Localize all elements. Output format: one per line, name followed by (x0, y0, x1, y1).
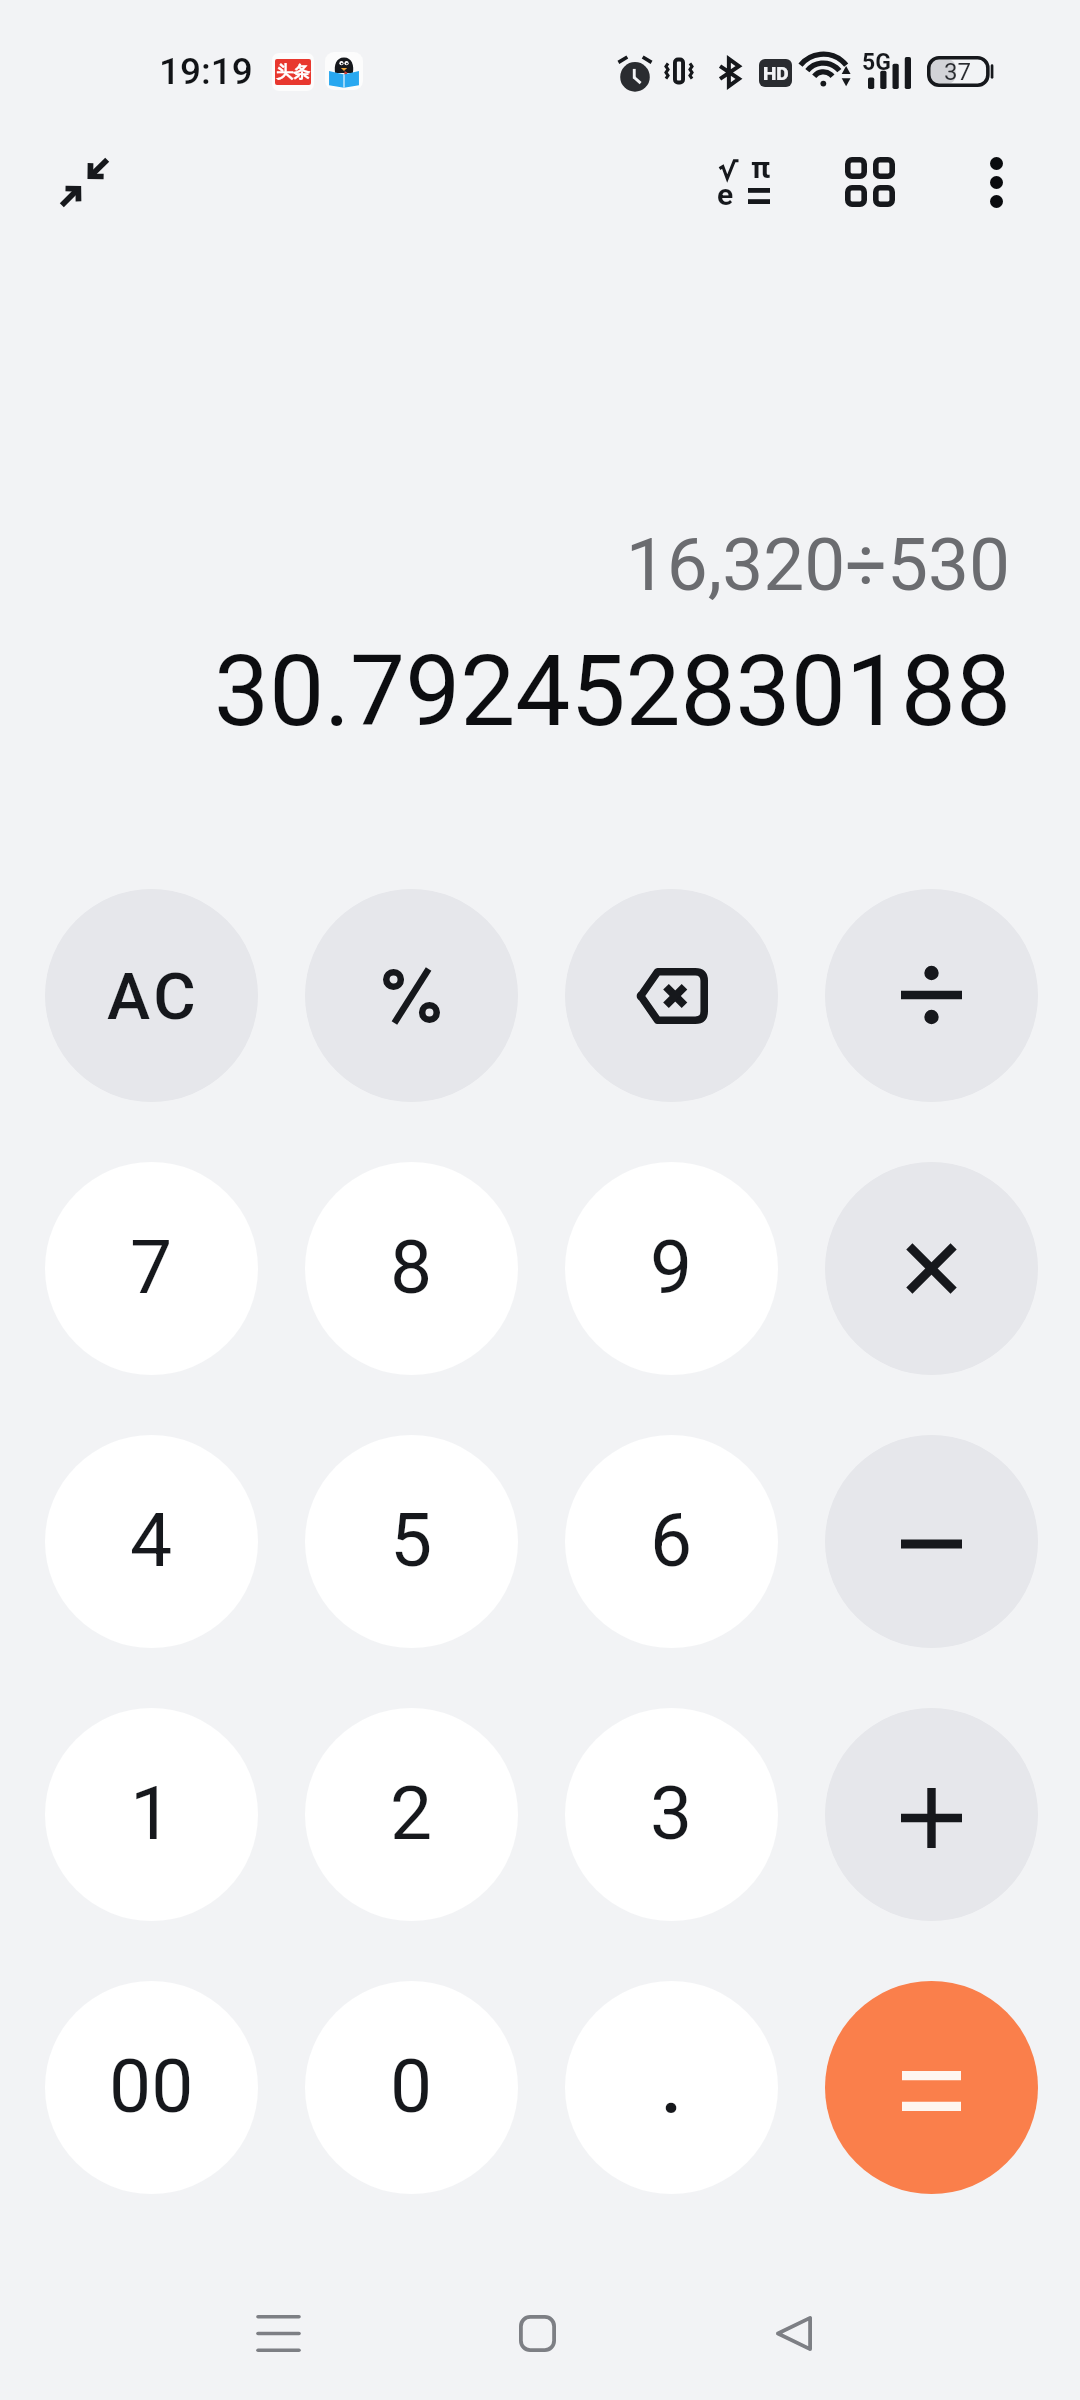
button[interactable]: Recents (218, 2273, 338, 2393)
staticText: 7 (130, 1223, 173, 1311)
staticText: 37 (944, 58, 971, 86)
button[interactable]: More options (944, 130, 1048, 234)
button[interactable]: Percent (305, 889, 518, 1102)
staticText: . (659, 2024, 685, 2135)
button[interactable]: 1 (45, 1708, 258, 1921)
button[interactable]: 9 (565, 1162, 778, 1375)
button[interactable]: AC (45, 889, 258, 1102)
staticText: 2 (390, 1769, 433, 1857)
button[interactable]: 2 (305, 1708, 518, 1921)
button[interactable]: 5 (305, 1435, 518, 1648)
staticText: 19:19 (159, 50, 253, 93)
button[interactable]: Backspace (565, 889, 778, 1102)
staticText: 0 (390, 2042, 433, 2130)
button[interactable]: . (565, 1981, 778, 2194)
button[interactable]: Scientific mode (691, 130, 795, 234)
button[interactable]: Back (734, 2273, 854, 2393)
button[interactable]: Plus (825, 1708, 1038, 1921)
button[interactable]: Divide (825, 889, 1038, 1102)
button[interactable]: 7 (45, 1162, 258, 1375)
staticText: 1 (130, 1769, 173, 1857)
button[interactable]: 4 (45, 1435, 258, 1648)
staticText: 5G (862, 49, 891, 76)
button[interactable]: Equals (825, 1981, 1038, 2194)
button[interactable]: Minus (825, 1435, 1038, 1648)
staticText: 00 (109, 2042, 194, 2130)
staticText: π (751, 150, 771, 185)
button[interactable]: Multiply (825, 1162, 1038, 1375)
button[interactable]: 00 (45, 1981, 258, 2194)
button[interactable]: 0 (305, 1981, 518, 2194)
staticText: 8 (390, 1223, 433, 1311)
staticText: 16,320÷530 (625, 522, 1010, 608)
staticText: 4 (130, 1496, 173, 1584)
button[interactable]: 3 (565, 1708, 778, 1921)
staticText: 3 (650, 1769, 693, 1857)
staticText: 9 (650, 1223, 693, 1311)
staticText: 30.792452830188 (214, 634, 1011, 749)
staticText: 5 (390, 1496, 433, 1584)
staticText: HD (763, 62, 789, 84)
staticText: e (717, 177, 734, 212)
button[interactable]: Collapse (32, 130, 136, 234)
button[interactable]: Unit converter (818, 130, 922, 234)
staticText: 6 (650, 1496, 693, 1584)
button[interactable]: 8 (305, 1162, 518, 1375)
staticText: AC (107, 959, 200, 1035)
button[interactable]: 6 (565, 1435, 778, 1648)
button[interactable]: Home (477, 2273, 597, 2393)
staticText: 头条 (276, 62, 310, 83)
